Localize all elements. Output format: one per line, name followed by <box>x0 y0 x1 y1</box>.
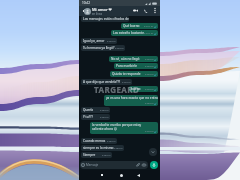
button[interactable]: Siempre <box>81 152 112 158</box>
staticText: 3:43 p.m <box>145 65 154 68</box>
button[interactable]: Contact photo <box>84 8 91 15</box>
staticText: bueno <box>131 87 141 91</box>
staticText: 3:43 p.m <box>145 73 154 76</box>
button[interactable]: Los extraño bastante <box>111 30 158 36</box>
staticText: Mi amor ❤️ <box>92 7 112 12</box>
staticText: No sé, aún no llegó <box>111 57 140 61</box>
staticText: la verdad te escribo porque estoy calien… <box>92 123 142 131</box>
button[interactable]: Para escribirle <box>114 63 158 69</box>
button[interactable]: No sé, aún no llegó <box>109 56 158 62</box>
staticText: Quería <box>83 108 94 112</box>
button[interactable]: Tu hermana ya llegó? <box>81 45 125 51</box>
staticText: 3:44 p.m <box>145 88 154 91</box>
staticText: ya es una hora exacta que no entra <box>106 96 158 100</box>
button[interactable]: Call <box>142 7 149 14</box>
staticText: Tu hermana ya llegó? <box>83 46 115 50</box>
staticText: Los mensajes están cifrados de <box>83 17 129 21</box>
staticText: 3:44 p.m <box>122 81 131 84</box>
staticText: A que dijo que vendría??? <box>83 80 121 84</box>
staticText: siempre es lo mismo <box>83 146 114 150</box>
button[interactable]: Qué bueno <box>121 23 158 29</box>
button[interactable]: Quería <box>81 107 110 113</box>
button[interactable]: A que dijo que vendría??? <box>81 79 132 85</box>
button[interactable]: bueno <box>129 86 158 92</box>
button[interactable]: Record voice message <box>150 161 158 169</box>
staticText: 3:42 p.m <box>115 47 124 50</box>
staticText: Los extraño bastante <box>113 31 144 35</box>
staticText: 3:48 p.m <box>102 154 111 157</box>
staticText: Quizás te responde <box>112 72 141 76</box>
button[interactable]: Recent apps <box>98 171 106 179</box>
button[interactable]: More options <box>151 7 158 14</box>
staticText: Qué bueno <box>123 24 140 28</box>
staticText: TARGEARD <box>94 84 140 95</box>
button[interactable]: la verdad te escribo porque estoy calien… <box>90 122 158 134</box>
staticText: 3:48 p.m <box>107 140 116 143</box>
button[interactable]: Mensaje <box>80 161 148 169</box>
button[interactable]: Cuando menos <box>81 138 117 144</box>
staticText: Para escribirle <box>116 64 137 68</box>
button[interactable]: Quizás te responde <box>110 71 158 77</box>
button[interactable]: Video call <box>132 7 139 14</box>
staticText: 3:41 p. m. <box>144 25 154 28</box>
staticText: 3:45 p.m <box>145 102 154 105</box>
staticText: 3:48 p.m <box>114 147 123 150</box>
button[interactable]: Back <box>80 7 87 14</box>
staticText: 3:43 p.m <box>145 58 154 61</box>
button[interactable]: ya es una hora exacta que no entra <box>104 95 158 106</box>
staticText: 3:47 p.m <box>145 130 154 133</box>
button[interactable]: Scroll to bottom <box>149 148 157 156</box>
button[interactable]: Back <box>134 171 142 179</box>
button[interactable]: siempre es lo mismo <box>81 145 124 151</box>
staticText: en línea <box>92 12 102 16</box>
button[interactable]: Los mensajes están cifrados de <box>81 16 129 22</box>
staticText: 3:41 p. m. <box>144 32 154 35</box>
button[interactable]: Igual yo, amor <box>81 38 117 44</box>
staticText: Y tu??? <box>83 115 93 119</box>
button[interactable]: Y tu??? <box>81 114 110 120</box>
staticText: Siempre <box>83 153 96 157</box>
staticText: Mensaje <box>86 163 136 167</box>
staticText: Cuando menos <box>83 139 106 143</box>
button[interactable]: Mi amor ❤️ <box>92 7 112 16</box>
staticText: 10:42 <box>82 1 90 5</box>
staticText: 3:46 p.m <box>100 109 109 112</box>
button[interactable]: Home <box>117 171 125 179</box>
staticText: 3:42 p.m <box>107 40 116 43</box>
staticText: 3:46 p.m <box>100 116 109 119</box>
staticText: Igual yo, amor <box>83 39 105 43</box>
